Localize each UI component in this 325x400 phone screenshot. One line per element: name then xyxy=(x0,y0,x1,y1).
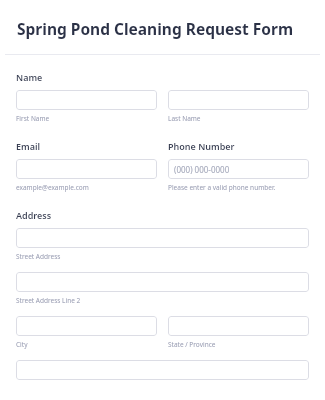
button[interactable]: City xyxy=(16,316,157,336)
staticText: Email xyxy=(16,140,41,152)
staticText: Phone Number xyxy=(168,140,235,152)
staticText: Name xyxy=(16,71,43,83)
staticText: First Name xyxy=(16,114,50,123)
staticText: example@example.com xyxy=(16,183,89,192)
button[interactable]: Street Address Line 2 xyxy=(16,272,309,292)
staticText: (000) 000-0000 xyxy=(174,164,230,175)
staticText: Last Name xyxy=(168,114,201,123)
button[interactable]: State / Province xyxy=(168,316,309,336)
button[interactable]: Postal / Zip Code xyxy=(16,360,309,380)
staticText: Address xyxy=(16,209,52,221)
button[interactable]: Street Address xyxy=(16,228,309,248)
button[interactable]: Email xyxy=(16,159,157,179)
staticText: Please enter a valid phone number. xyxy=(168,183,276,192)
button[interactable]: Phone Number xyxy=(168,159,309,179)
button[interactable]: Last Name xyxy=(168,90,309,110)
staticText: State / Province xyxy=(168,340,216,349)
staticText: Spring Pond Cleaning Request Form xyxy=(17,18,294,39)
staticText: City xyxy=(16,340,28,349)
staticText: Street Address xyxy=(16,252,61,261)
staticText: Street Address Line 2 xyxy=(16,296,81,305)
button[interactable]: First Name xyxy=(16,90,157,110)
